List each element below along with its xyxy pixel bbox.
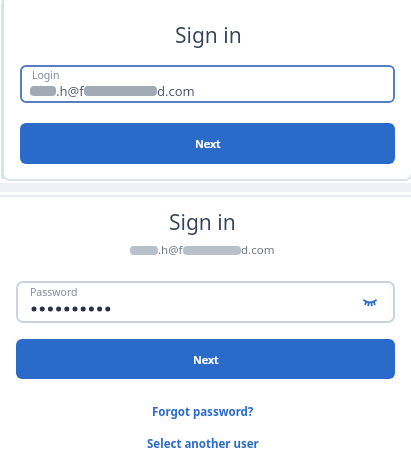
staticText: Sign in (169, 208, 236, 237)
button[interactable]: Next (16, 339, 395, 379)
staticText: .h@f (158, 242, 183, 258)
button[interactable]: Forgot password? (152, 404, 254, 420)
staticText: d.com (241, 242, 275, 258)
staticText: Next (195, 136, 221, 151)
staticText: Forgot password? (152, 404, 254, 420)
staticText: Sign in (175, 21, 242, 50)
staticText: Login (32, 68, 60, 82)
button[interactable]: Next (20, 123, 395, 164)
button[interactable]: Login (20, 65, 395, 103)
button[interactable]: Select another user (147, 436, 259, 452)
button[interactable]: Password (16, 281, 395, 323)
staticText: Password (30, 285, 78, 299)
staticText: .h@f (56, 82, 84, 100)
staticText: Next (193, 352, 219, 367)
staticText: d.com (157, 82, 195, 100)
button[interactable] (363, 298, 377, 309)
staticText: Select another user (147, 436, 259, 452)
